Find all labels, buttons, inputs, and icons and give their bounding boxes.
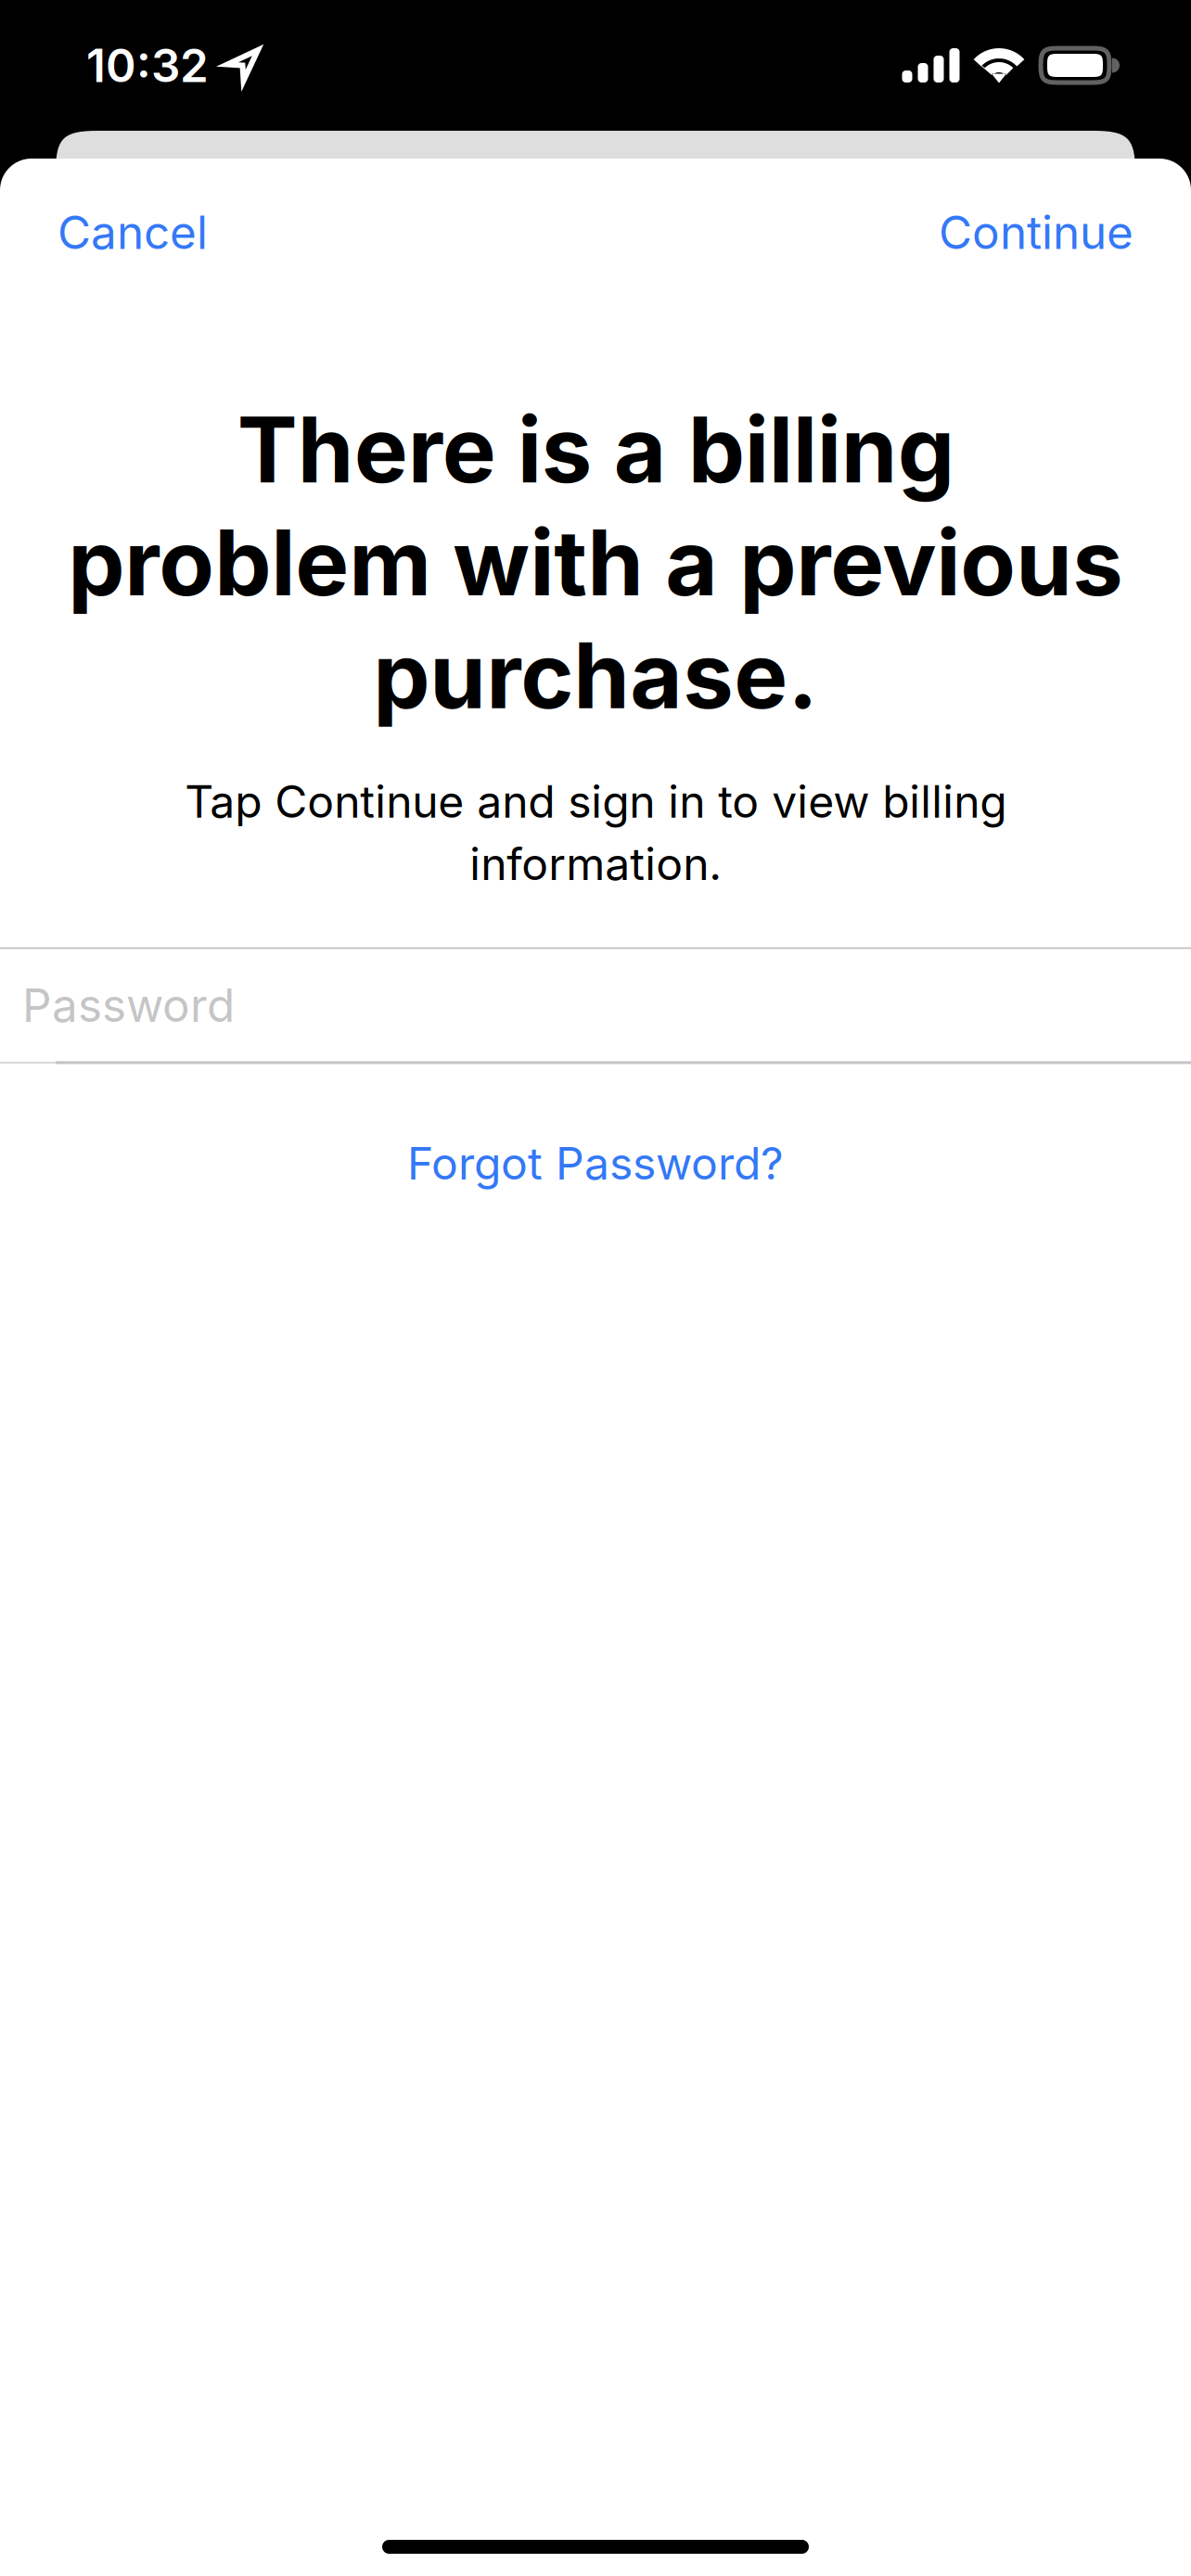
staticText: 10:32 bbox=[86, 38, 209, 93]
button[interactable]: Continue bbox=[905, 169, 1191, 295]
staticText: Cancel bbox=[58, 205, 208, 260]
button[interactable]: Forgot Password? bbox=[352, 1099, 839, 1227]
staticText: Password bbox=[22, 977, 235, 1033]
staticText: There is a billing problem with a previo… bbox=[68, 395, 1123, 730]
button[interactable]: Password bbox=[0, 949, 1191, 1061]
staticText: Forgot Password? bbox=[407, 1136, 784, 1190]
button[interactable]: Cancel bbox=[0, 169, 241, 295]
staticText: Tap Continue and sign in to view billing… bbox=[185, 775, 1006, 891]
staticText: Continue bbox=[939, 205, 1133, 260]
